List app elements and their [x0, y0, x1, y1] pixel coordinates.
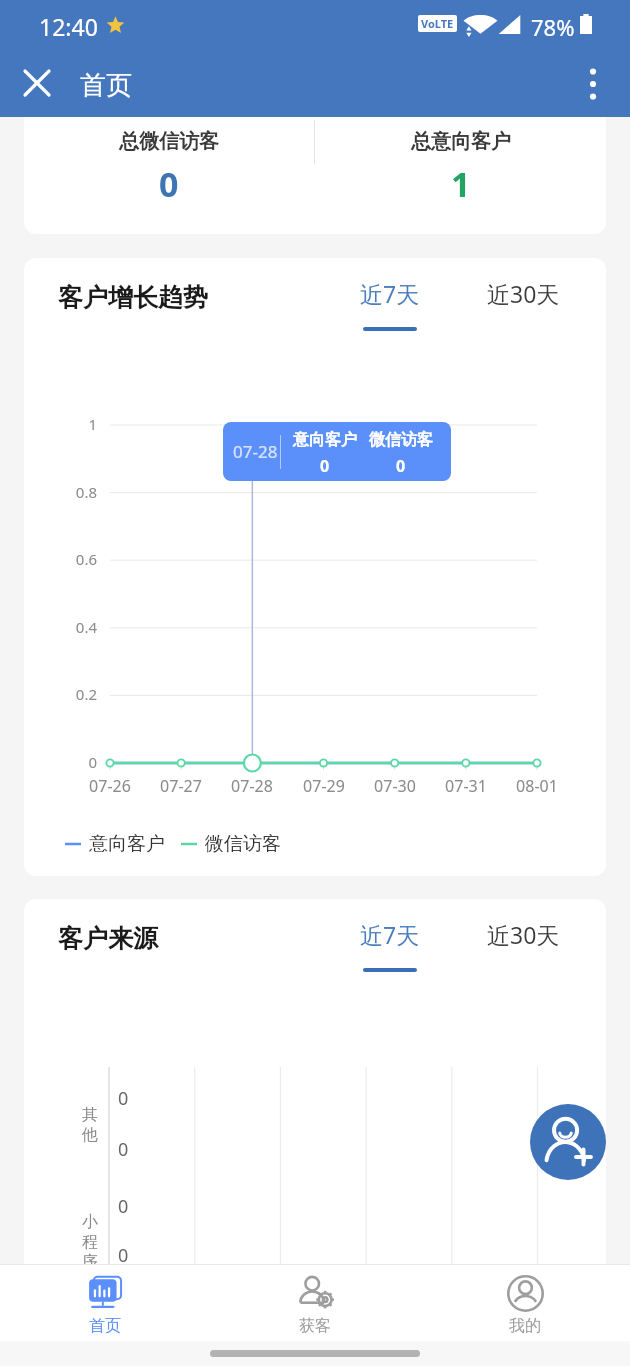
staticText: 08-01	[502, 775, 572, 797]
staticText: 总微信访客	[119, 129, 219, 154]
staticText: 获客	[299, 1316, 331, 1336]
staticText: 07-31	[431, 775, 501, 797]
staticText: 0	[118, 1194, 129, 1219]
staticText: 其	[82, 1105, 98, 1125]
staticText: 我的	[509, 1316, 541, 1336]
staticText: 近30天	[487, 919, 560, 950]
staticText: 程	[82, 1232, 98, 1252]
staticText: 首页	[80, 69, 132, 102]
staticText: 微信访客	[205, 832, 281, 856]
staticText: 0.4	[40, 617, 97, 637]
staticText: 意向客户	[89, 832, 165, 856]
staticText: 0	[320, 455, 330, 477]
staticText: 序	[82, 1252, 98, 1264]
staticText: 1	[40, 414, 97, 434]
staticText: 07-29	[289, 775, 359, 797]
button[interactable]: Close	[13, 59, 61, 107]
staticText: 0	[118, 1137, 129, 1162]
button[interactable]: 首页	[0, 1265, 210, 1341]
staticText: 0	[118, 1243, 129, 1264]
staticText: 0.2	[40, 684, 97, 704]
button[interactable]: 近7天	[349, 913, 431, 975]
button[interactable]: 近30天	[475, 272, 571, 334]
button[interactable]: 总微信访客	[24, 117, 314, 234]
staticText: 78%	[531, 12, 575, 42]
staticText: 1	[451, 161, 471, 207]
staticText: 07-26	[75, 775, 145, 797]
staticText: 他	[82, 1125, 98, 1145]
staticText: 07-28	[233, 440, 278, 463]
button[interactable]: 获客	[210, 1265, 420, 1341]
staticText: 近7天	[360, 919, 420, 950]
staticText: 总意向客户	[411, 129, 511, 154]
staticText: 近7天	[360, 278, 420, 309]
staticText: 客户来源	[58, 923, 158, 954]
staticText: 07-28	[217, 775, 287, 797]
button[interactable]: 总意向客户	[315, 117, 606, 234]
staticText: 0.8	[40, 482, 97, 502]
button[interactable]: 意向客户	[65, 831, 165, 857]
staticText: 意向客户	[293, 430, 357, 450]
staticText: 0	[118, 1086, 129, 1111]
button[interactable]: 微信访客	[181, 831, 281, 857]
button[interactable]: 我的	[420, 1265, 630, 1341]
staticText: 07-27	[146, 775, 216, 797]
staticText: 0	[159, 161, 179, 207]
staticText: 0.6	[40, 549, 97, 569]
staticText: 小	[82, 1212, 98, 1232]
button[interactable]: Add customer	[530, 1104, 606, 1180]
staticText: 0	[396, 455, 406, 477]
button[interactable]: 近7天	[349, 272, 431, 334]
button[interactable]: More options	[569, 60, 617, 108]
staticText: 客户增长趋势	[58, 282, 208, 313]
staticText: 07-30	[360, 775, 430, 797]
button[interactable]: 近30天	[475, 913, 571, 975]
staticText: 0	[40, 752, 97, 772]
staticText: 微信访客	[369, 430, 433, 450]
staticText: 首页	[89, 1316, 121, 1336]
staticText: VoLTE	[421, 16, 454, 31]
staticText: 近30天	[487, 278, 560, 309]
staticText: 12:40	[39, 11, 98, 42]
